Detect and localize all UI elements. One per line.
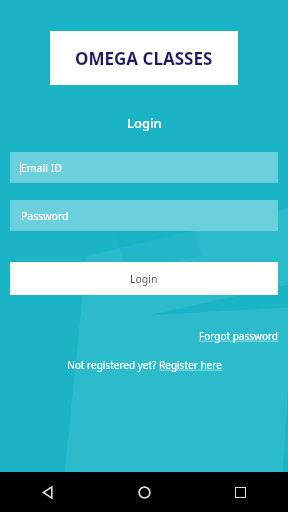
- staticText: Password: [21, 209, 69, 223]
- staticText: Login: [130, 272, 158, 286]
- staticText: Login: [127, 114, 162, 132]
- staticText: OMEGA CLASSES: [75, 47, 213, 70]
- button[interactable]: Home: [96, 472, 192, 512]
- button[interactable]: Login: [10, 262, 278, 295]
- button[interactable]: Password: [10, 200, 278, 231]
- button[interactable]: OMEGA CLASSES: [50, 31, 238, 85]
- staticText: Email ID: [21, 161, 62, 175]
- staticText: Not registered yet? Register here: [67, 358, 222, 372]
- button[interactable]: Not registered yet? Register here: [0, 358, 288, 372]
- button[interactable]: Recent apps: [192, 472, 288, 512]
- button[interactable]: Email ID: [10, 152, 278, 183]
- staticText: Forgot password: [199, 329, 279, 343]
- button[interactable]: Back: [0, 472, 96, 512]
- button[interactable]: Forgot password: [199, 329, 279, 343]
